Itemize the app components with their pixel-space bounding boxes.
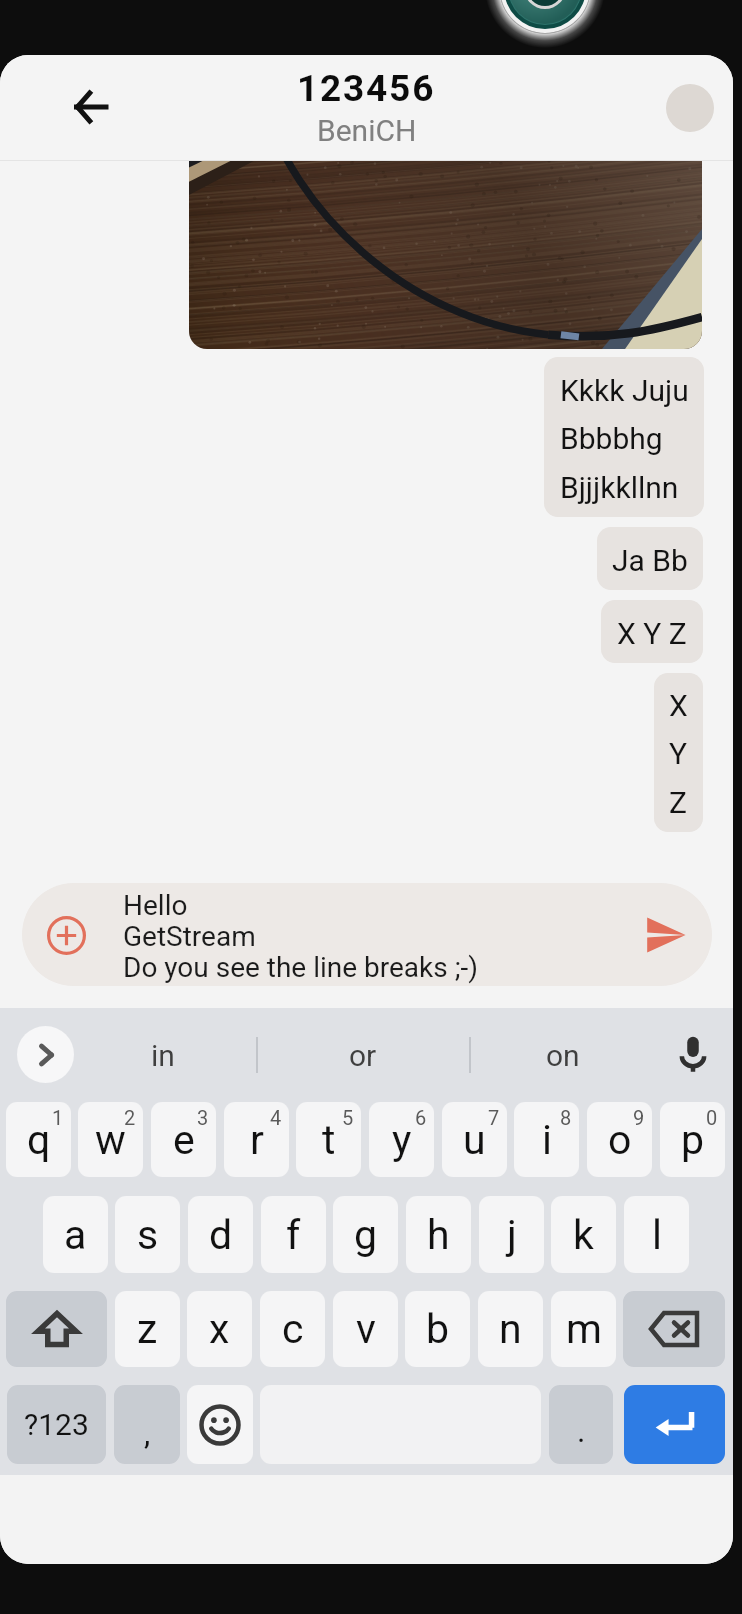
button[interactable]: z — [115, 1291, 180, 1367]
button[interactable]: or — [273, 1011, 453, 1099]
staticText: t — [322, 1116, 336, 1164]
staticText: 4 — [270, 1106, 282, 1129]
button[interactable]: x — [187, 1291, 252, 1367]
button[interactable]: j — [479, 1196, 544, 1273]
button[interactable]: q — [6, 1102, 71, 1177]
button[interactable]: o — [587, 1102, 652, 1177]
staticText: s — [137, 1211, 159, 1259]
staticText: o — [608, 1116, 632, 1164]
button[interactable]: Profile — [666, 84, 714, 132]
button[interactable]: Send — [639, 908, 693, 962]
staticText: f — [286, 1211, 301, 1259]
staticText: b — [426, 1305, 450, 1353]
button[interactable]: y — [369, 1102, 434, 1177]
button[interactable]: u — [442, 1102, 507, 1177]
staticText: in — [151, 1038, 175, 1073]
staticText: 123456 — [297, 67, 436, 110]
button[interactable]: w — [78, 1102, 143, 1177]
button[interactable]: k — [551, 1196, 616, 1273]
button[interactable]: X Y Z — [601, 600, 703, 663]
staticText: , — [144, 1414, 151, 1452]
staticText: 3 — [197, 1106, 209, 1129]
button[interactable]: Kkkk Juju Bbbbhg Bjjjkkllnn — [544, 357, 704, 517]
button[interactable]: on — [473, 1011, 653, 1099]
button[interactable]: Voice input — [668, 1029, 718, 1079]
button[interactable]: Emoji — [187, 1385, 253, 1464]
staticText: 2 — [124, 1106, 136, 1129]
button[interactable]: i — [514, 1102, 579, 1177]
staticText: BeniCH — [317, 113, 417, 148]
staticText: 7 — [488, 1106, 500, 1129]
staticText: n — [499, 1305, 522, 1353]
staticText: q — [27, 1116, 51, 1164]
staticText: . — [577, 1412, 586, 1450]
button[interactable]: n — [478, 1291, 543, 1367]
staticText: 6 — [415, 1106, 427, 1129]
staticText: X Y Z — [669, 688, 688, 821]
staticText: h — [427, 1211, 450, 1259]
button[interactable]: b — [405, 1291, 470, 1367]
button[interactable]: ?123 — [7, 1385, 106, 1464]
button[interactable]: l — [624, 1196, 689, 1273]
button[interactable]: Ja Bb — [597, 527, 703, 590]
button[interactable]: Enter — [624, 1385, 725, 1464]
button[interactable]: a — [43, 1196, 108, 1273]
staticText: Hello GetStream Do you see the line brea… — [123, 889, 479, 983]
button[interactable]: t — [296, 1102, 361, 1177]
staticText: g — [354, 1211, 378, 1259]
staticText: v — [356, 1305, 376, 1353]
staticText: d — [209, 1211, 233, 1259]
button[interactable]: f — [261, 1196, 326, 1273]
button[interactable]: Attach — [39, 908, 93, 962]
staticText: X Y Z — [617, 616, 687, 651]
staticText: r — [250, 1116, 264, 1164]
staticText: y — [392, 1116, 412, 1164]
button[interactable]: m — [551, 1291, 616, 1367]
staticText: Kkkk Juju Bbbbhg Bjjjkkllnn — [560, 373, 689, 506]
staticText: e — [173, 1116, 195, 1164]
staticText: 8 — [560, 1106, 572, 1129]
button[interactable]: r — [224, 1102, 289, 1177]
staticText: w — [95, 1116, 126, 1164]
staticText: p — [681, 1116, 705, 1164]
staticText: k — [573, 1211, 594, 1259]
staticText: 5 — [342, 1106, 354, 1129]
staticText: x — [209, 1305, 230, 1353]
button[interactable]: s — [115, 1196, 180, 1273]
staticText: u — [463, 1116, 486, 1164]
staticText: 1 — [52, 1106, 64, 1129]
staticText: on — [546, 1038, 580, 1073]
button[interactable]: Backspace — [623, 1291, 725, 1367]
staticText: or — [349, 1038, 377, 1073]
button[interactable]: Expand toolbar — [17, 1026, 74, 1083]
button[interactable]: p — [660, 1102, 725, 1177]
staticText: 0 — [706, 1106, 718, 1129]
button[interactable]: g — [333, 1196, 398, 1273]
staticText: m — [566, 1305, 602, 1353]
button[interactable]: h — [406, 1196, 471, 1273]
button[interactable]: X Y Z — [654, 673, 703, 832]
staticText: ?123 — [24, 1407, 89, 1442]
button[interactable] — [189, 129, 702, 349]
button[interactable]: Period — [549, 1385, 613, 1464]
button[interactable]: e — [151, 1102, 216, 1177]
button[interactable]: Shift — [6, 1291, 107, 1367]
staticText: z — [137, 1305, 158, 1353]
staticText: 9 — [633, 1106, 645, 1129]
staticText: i — [542, 1116, 552, 1164]
button[interactable]: v — [333, 1291, 398, 1367]
button[interactable]: c — [260, 1291, 325, 1367]
button[interactable]: Comma — [114, 1385, 180, 1464]
staticText: Ja Bb — [612, 543, 688, 578]
button[interactable]: in — [73, 1011, 253, 1099]
staticText: j — [507, 1211, 517, 1259]
button[interactable]: Back — [59, 75, 123, 139]
staticText: a — [64, 1211, 87, 1259]
button[interactable]: d — [188, 1196, 253, 1273]
staticText: l — [652, 1211, 662, 1259]
staticText: c — [282, 1305, 304, 1353]
